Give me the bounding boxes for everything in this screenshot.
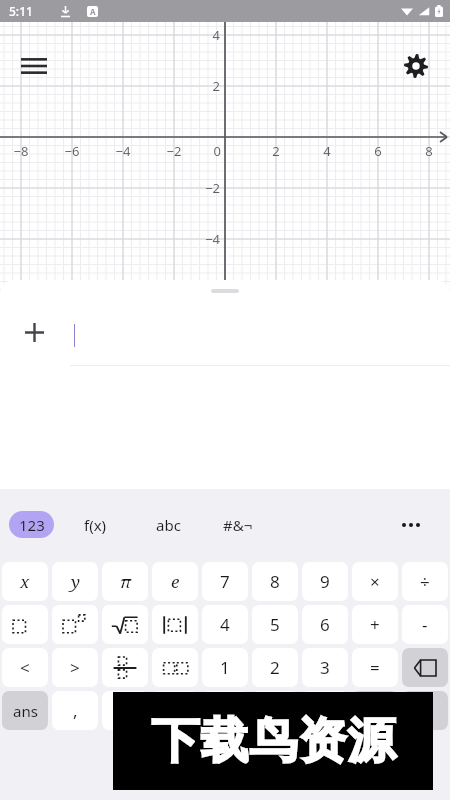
button[interactable] [152,605,198,644]
staticText: 4 [220,613,230,636]
button[interactable]: Settings [392,42,440,90]
button[interactable] [102,605,148,644]
button[interactable] [70,302,450,366]
button[interactable]: − [302,691,348,730]
staticText: −6 [60,142,84,160]
button[interactable] [52,605,98,644]
button[interactable]: ☰ [402,691,448,730]
staticText: 6 [320,613,330,636]
button[interactable]: abc [142,511,194,538]
staticText: − [320,699,330,722]
staticText: e [171,570,180,593]
button[interactable]: ) [152,691,198,730]
staticText: 1 [220,656,230,679]
staticText: 6 [366,142,390,160]
staticText: 4 [315,142,339,160]
button[interactable]: 1 [202,648,248,687]
button[interactable] [402,648,448,687]
staticText: 8 [417,142,441,160]
button[interactable] [2,605,48,644]
staticText: −4 [111,142,135,160]
button[interactable]: ( [102,691,148,730]
button[interactable]: 7 [202,562,248,601]
staticText: . [273,699,278,722]
button[interactable]: × [352,562,398,601]
staticText: < [20,656,30,679]
staticText: ↵ [369,702,382,719]
staticText: + [370,613,380,636]
button[interactable]: = [352,648,398,687]
staticText: × [370,570,380,593]
button[interactable]: ↵ [352,691,398,730]
button[interactable]: 4 [202,605,248,644]
staticText: - [422,613,428,636]
button[interactable]: 5 [252,605,298,644]
button[interactable]: Add expression [12,310,56,354]
button[interactable]: π [102,562,148,601]
staticText: π [120,570,131,593]
button[interactable]: Menu [10,42,58,90]
staticText: ) [172,699,178,722]
staticText: −2 [198,179,220,197]
button[interactable]: + [352,605,398,644]
button[interactable]: - [402,605,448,644]
button[interactable] [102,648,148,687]
staticText: #&¬ [223,515,253,535]
staticText: x [20,570,30,593]
staticText: 5 [270,613,280,636]
staticText: 2 [264,142,288,160]
button[interactable]: , [52,691,98,730]
button[interactable]: More options [393,507,429,543]
staticText: 123 [19,515,45,535]
staticText: 0 [201,142,221,160]
staticText: A [90,6,96,17]
button[interactable]: 8 [252,562,298,601]
button[interactable]: x [2,562,48,601]
button[interactable]: < [2,648,48,687]
staticText: 下载鸟资源 [151,711,396,771]
staticText: 2 [198,77,220,95]
staticText: abc [156,515,181,535]
staticText: f(x) [84,515,107,535]
button[interactable]: 9 [302,562,348,601]
button[interactable]: y [52,562,98,601]
button[interactable]: 2 [252,648,298,687]
button[interactable] [152,648,198,687]
staticText: 4 [198,26,220,44]
button[interactable]: 0 [202,691,248,730]
staticText: = [370,656,380,679]
button[interactable]: f(x) [69,511,121,538]
staticText: ans [13,701,38,721]
staticText: ÷ [420,570,430,593]
staticText: > [70,656,80,679]
button[interactable]: #&¬ [212,511,264,538]
button[interactable]: ÷ [402,562,448,601]
button[interactable]: 3 [302,648,348,687]
staticText: 5:11 [9,3,33,19]
staticText: −8 [9,142,33,160]
button[interactable]: . [252,691,298,730]
button[interactable]: ans [2,691,48,730]
staticText: , [73,699,78,722]
button[interactable]: 6 [302,605,348,644]
button[interactable]: 123 [9,511,54,538]
button[interactable]: > [52,648,98,687]
staticText: 3 [320,656,330,679]
staticText: −2 [162,142,186,160]
staticText: 2 [270,656,280,679]
button[interactable]: e [152,562,198,601]
staticText: 0 [220,699,230,722]
staticText: −4 [198,230,220,248]
staticText: 8 [270,570,280,593]
staticText: 9 [320,570,330,593]
staticText: 7 [220,570,230,593]
staticText: y [71,570,80,593]
